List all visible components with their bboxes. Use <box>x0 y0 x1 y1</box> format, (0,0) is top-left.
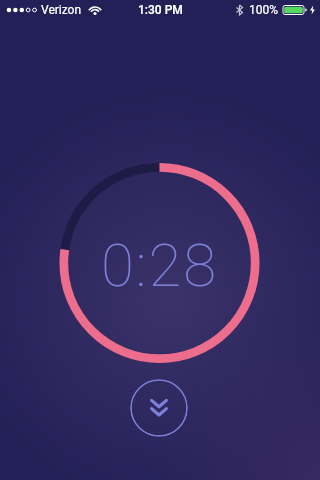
staticText: 0:28 <box>101 230 219 300</box>
staticText: 1:30 PM <box>138 3 183 17</box>
staticText: Verizon <box>41 3 82 17</box>
staticText: 100% <box>249 3 279 17</box>
button[interactable] <box>130 379 188 437</box>
